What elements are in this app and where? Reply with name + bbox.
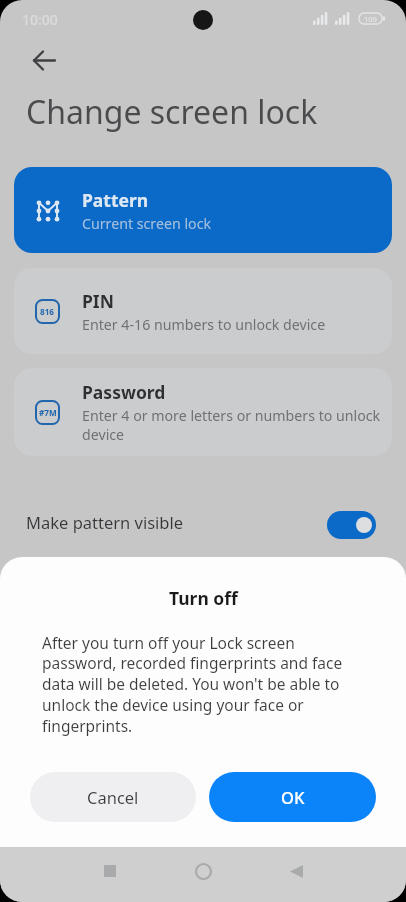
staticText: 10:00 xyxy=(22,10,58,29)
staticText: PIN xyxy=(82,289,114,313)
staticText: Cancel xyxy=(87,786,139,808)
staticText: 100 xyxy=(364,14,377,24)
button[interactable]: #7M xyxy=(14,368,392,456)
staticText: Change screen lock xyxy=(26,90,318,134)
button[interactable]: Make pattern visible xyxy=(26,508,376,536)
staticText: Password xyxy=(82,380,166,404)
button[interactable]: 816 xyxy=(14,268,392,354)
staticText: Pattern xyxy=(82,188,149,212)
staticText: Enter 4-16 numbers to unlock device xyxy=(82,315,326,334)
button[interactable]: OK xyxy=(209,772,376,822)
staticText: After you turn off your Lock screen pass… xyxy=(42,632,364,737)
staticText: Current screen lock xyxy=(82,214,212,233)
staticText: Enter 4 or more letters or numbers to un… xyxy=(82,406,381,425)
button[interactable]: Cancel xyxy=(30,772,196,822)
button[interactable] xyxy=(24,40,64,80)
staticText: 816 xyxy=(40,306,55,317)
button[interactable]: Pattern xyxy=(14,167,392,253)
staticText: #7M xyxy=(39,407,57,418)
button[interactable] xyxy=(327,511,376,539)
button[interactable] xyxy=(181,849,225,893)
staticText: Turn off xyxy=(169,586,238,610)
button[interactable] xyxy=(274,849,318,893)
button[interactable] xyxy=(88,849,132,893)
staticText: OK xyxy=(281,786,305,808)
staticText: device xyxy=(82,425,125,444)
staticText: Make pattern visible xyxy=(26,511,184,533)
